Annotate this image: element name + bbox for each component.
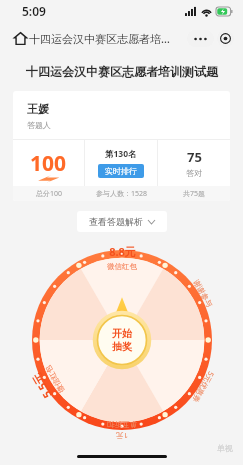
staticText: 实时排行 [105, 166, 137, 176]
staticText: 十四运会汉中赛区志愿者培训测试题 [26, 64, 218, 79]
button[interactable]: More [187, 30, 214, 47]
button[interactable]: Home [8, 26, 32, 50]
staticText: 查看答题解析 [89, 216, 143, 227]
staticText: 开始 [112, 327, 132, 340]
staticText: 1元 单五折扣 [107, 420, 137, 441]
staticText: 谢谢参与 [192, 278, 214, 309]
button[interactable]: Close [217, 30, 234, 47]
staticText: 第130名 [105, 148, 137, 160]
staticText: 答对 [186, 168, 202, 178]
staticText: 参与人数：1528 [96, 189, 148, 199]
staticText: 共75题 [183, 189, 206, 199]
staticText: 5元优惠券 [190, 369, 217, 405]
staticText: 王媛 [27, 102, 49, 116]
staticText: 抽奖 [112, 340, 132, 353]
staticText: 75 [187, 148, 202, 166]
button[interactable]: 抽奖转盘 [32, 250, 212, 430]
staticText: 十四运会汉中赛区志愿者培… [29, 31, 170, 46]
staticText: 8.8元 [109, 244, 136, 259]
staticText: 5:09 [22, 3, 46, 19]
staticText: 微信红包 [40, 360, 68, 398]
staticText: 单视 [217, 443, 233, 453]
staticText: 100 [30, 149, 67, 178]
staticText: 答题人 [27, 120, 51, 130]
button[interactable]: 查看答题解析 [77, 211, 167, 232]
staticText: 5.5元 [28, 371, 55, 401]
staticText: 总分100 [36, 189, 63, 199]
button[interactable]: 实时排行 [98, 164, 144, 178]
staticText: 微信红包 [103, 261, 141, 271]
